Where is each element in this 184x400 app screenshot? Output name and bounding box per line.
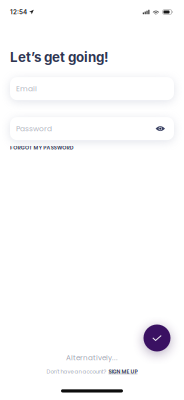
button[interactable]: Password bbox=[10, 117, 174, 140]
staticText: Don’t have an account? bbox=[46, 368, 106, 375]
button[interactable]: Continue bbox=[143, 324, 170, 351]
staticText: Password bbox=[16, 123, 52, 134]
button[interactable]: Email bbox=[10, 77, 174, 100]
staticText: FORGOT MY PASSWORD bbox=[10, 144, 74, 151]
staticText: Alternatively... bbox=[66, 353, 118, 363]
staticText: Let’s get going! bbox=[10, 49, 109, 65]
button[interactable]: Don’t have an account? bbox=[46, 368, 137, 375]
button[interactable]: FORGOT MY PASSWORD bbox=[0, 140, 84, 153]
staticText: 12:54 bbox=[10, 8, 27, 16]
staticText: Email bbox=[16, 83, 37, 94]
staticText: SIGN ME UP bbox=[108, 368, 137, 375]
